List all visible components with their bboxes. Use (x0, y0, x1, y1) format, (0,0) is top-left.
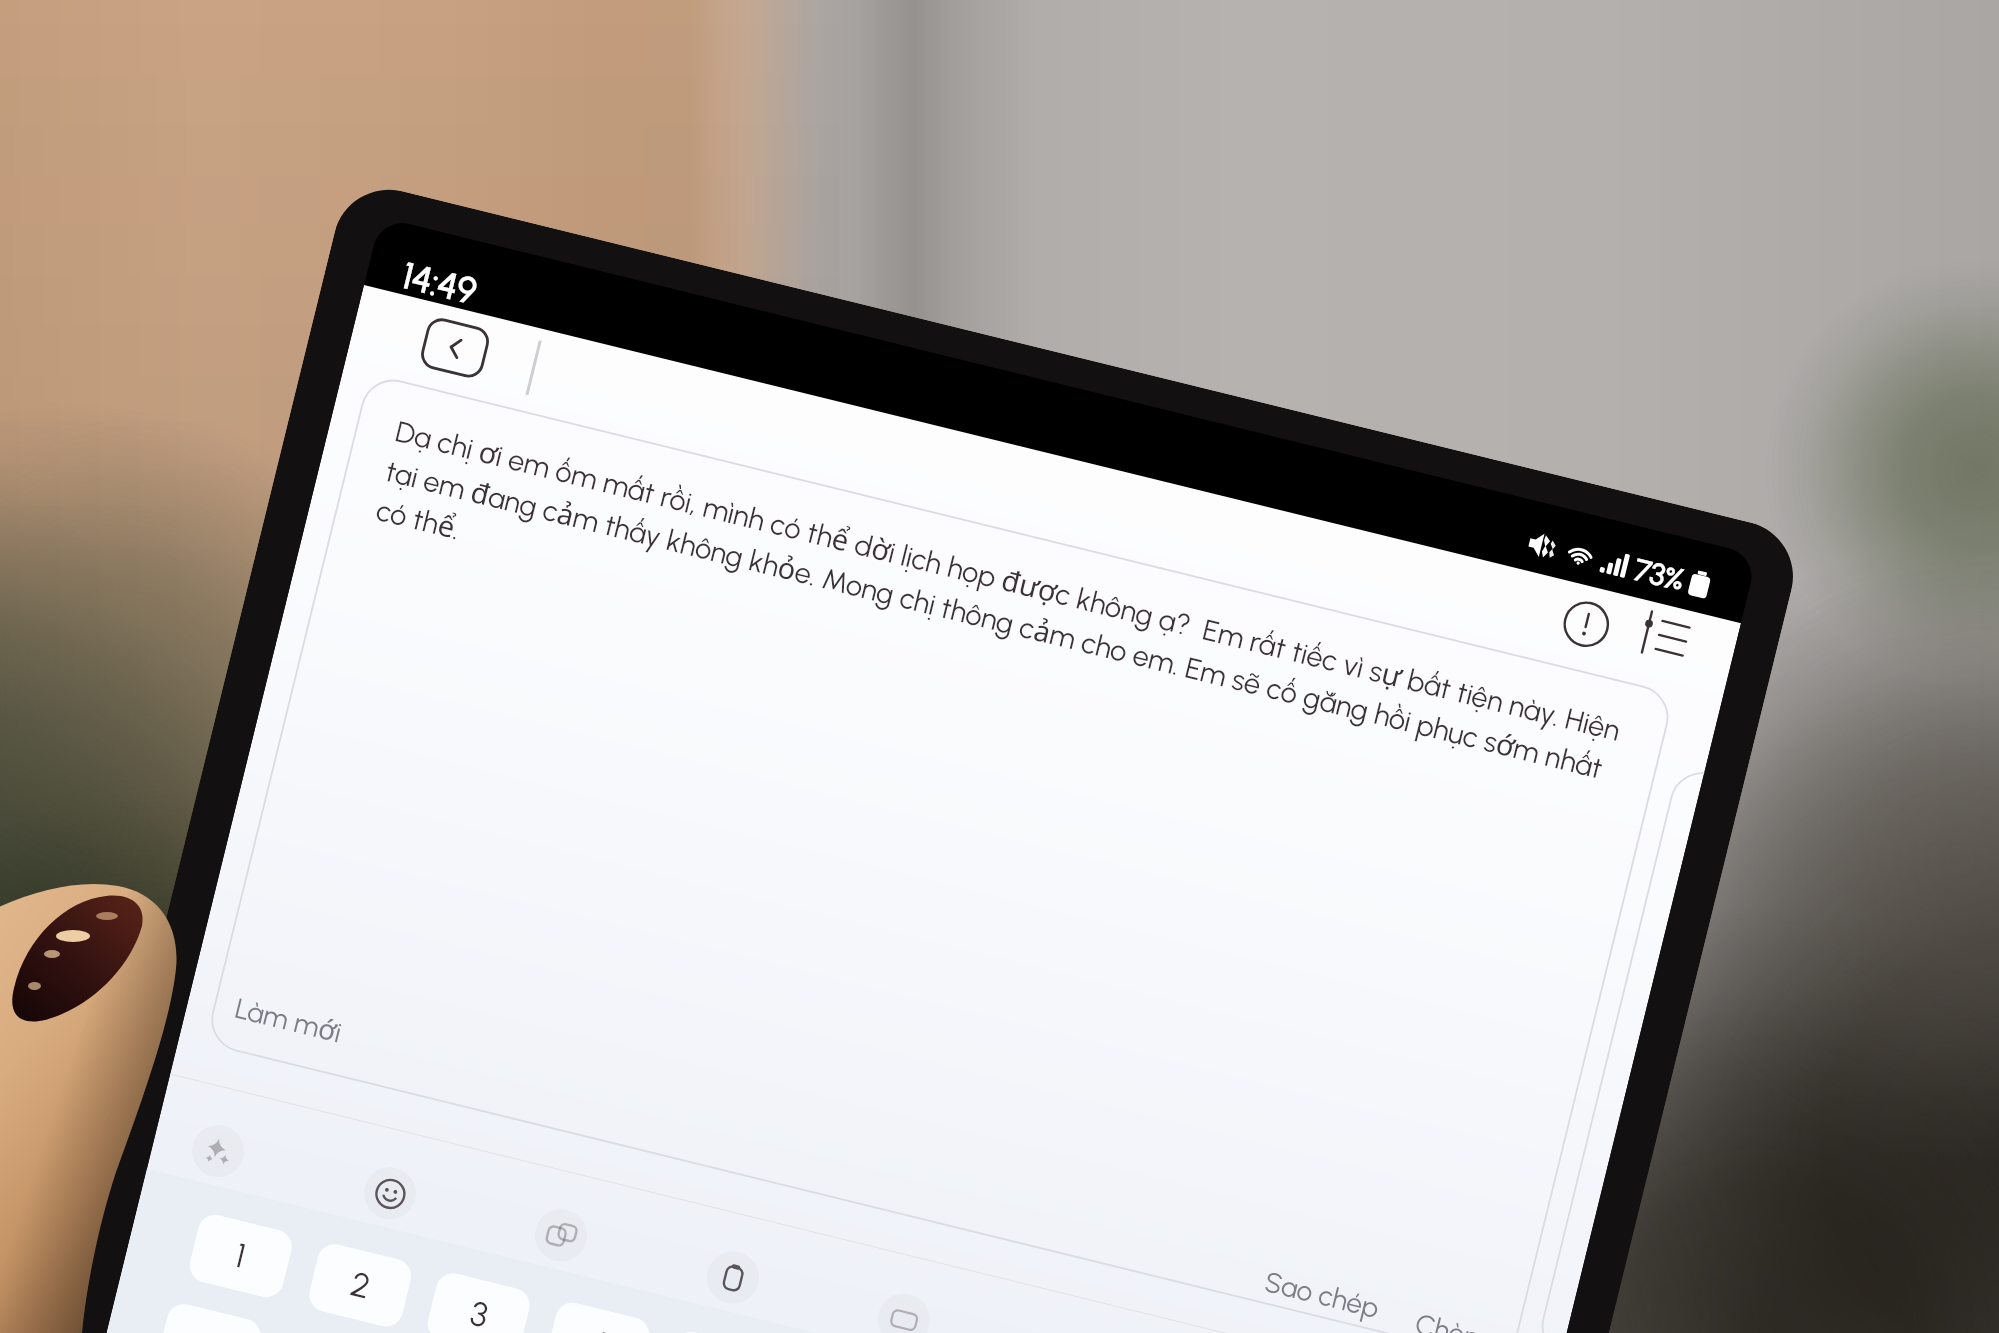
button[interactable]: Back (420, 317, 490, 379)
staticText: 1 (231, 1235, 250, 1277)
button[interactable]: Sao chép (1261, 1264, 1383, 1325)
staticText: 4 (584, 1322, 613, 1333)
button[interactable]: Text options (1631, 603, 1696, 669)
staticText: Làm mới (232, 988, 346, 1050)
staticText: 73% (1631, 551, 1689, 598)
button[interactable]: 1 (186, 1211, 296, 1301)
button[interactable]: Emoji (359, 1162, 421, 1225)
button[interactable]: Information (1554, 592, 1619, 657)
button[interactable]: q (155, 1300, 264, 1333)
button[interactable]: Clipboard (701, 1246, 764, 1309)
button[interactable]: 2 (305, 1240, 415, 1330)
staticText: 14:49 (398, 254, 481, 313)
staticText: 3 (466, 1293, 492, 1333)
button[interactable]: Chèn (1412, 1306, 1483, 1333)
button[interactable]: Settings (872, 1288, 935, 1333)
staticText: 2 (347, 1263, 375, 1308)
button[interactable]: Magic compose (187, 1120, 250, 1183)
button[interactable]: 4 (543, 1299, 653, 1333)
staticText: Dạ chị ơi em ốm mất rồi, mình có thể dời… (372, 410, 1640, 831)
button[interactable]: Translate (529, 1204, 592, 1267)
button[interactable]: 3 (424, 1269, 533, 1333)
